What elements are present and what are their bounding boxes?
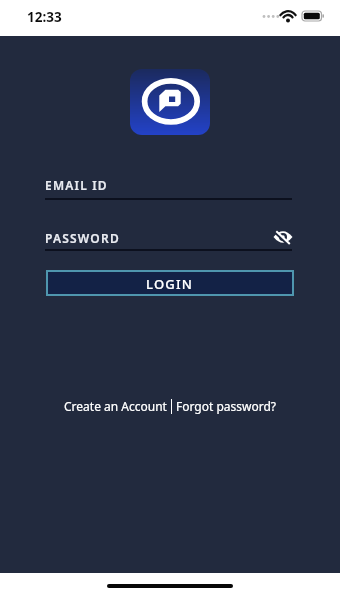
staticText: EMAIL ID	[45, 177, 108, 193]
button[interactable]: LOGIN	[46, 270, 294, 296]
staticText: 12:33	[27, 8, 62, 26]
staticText: LOGIN	[146, 275, 194, 293]
staticText: PASSWORD	[45, 230, 120, 246]
button[interactable]: EMAIL ID	[45, 177, 292, 200]
button[interactable]	[271, 226, 295, 246]
button[interactable]: Create an Account	[64, 398, 167, 414]
button[interactable]: Forgot password?	[176, 398, 277, 414]
button[interactable]: PASSWORD	[45, 230, 292, 251]
